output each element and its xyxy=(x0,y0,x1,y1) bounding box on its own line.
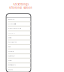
staticText: Passwords xyxy=(8,41,17,43)
staticText: Reminders xyxy=(8,64,16,66)
staticText: Notes xyxy=(8,60,12,61)
staticText: Wallet xyxy=(8,37,11,39)
staticText: reference screen xyxy=(8,6,32,9)
staticText: General xyxy=(8,18,14,20)
staticText: Phone xyxy=(8,69,13,71)
staticText: Calendar xyxy=(8,55,15,57)
staticText: iOS Settings xyxy=(12,2,28,6)
staticText: Privacy & Security xyxy=(8,28,21,29)
staticText: Accessibility xyxy=(8,23,16,25)
staticText: Mail xyxy=(8,46,10,48)
staticText: App Store xyxy=(8,32,15,34)
staticText: Contacts xyxy=(8,50,14,52)
